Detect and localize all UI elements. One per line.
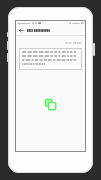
button[interactable]: Copy xyxy=(44,98,57,111)
button[interactable] xyxy=(19,48,82,70)
button[interactable]: Back xyxy=(18,27,25,34)
